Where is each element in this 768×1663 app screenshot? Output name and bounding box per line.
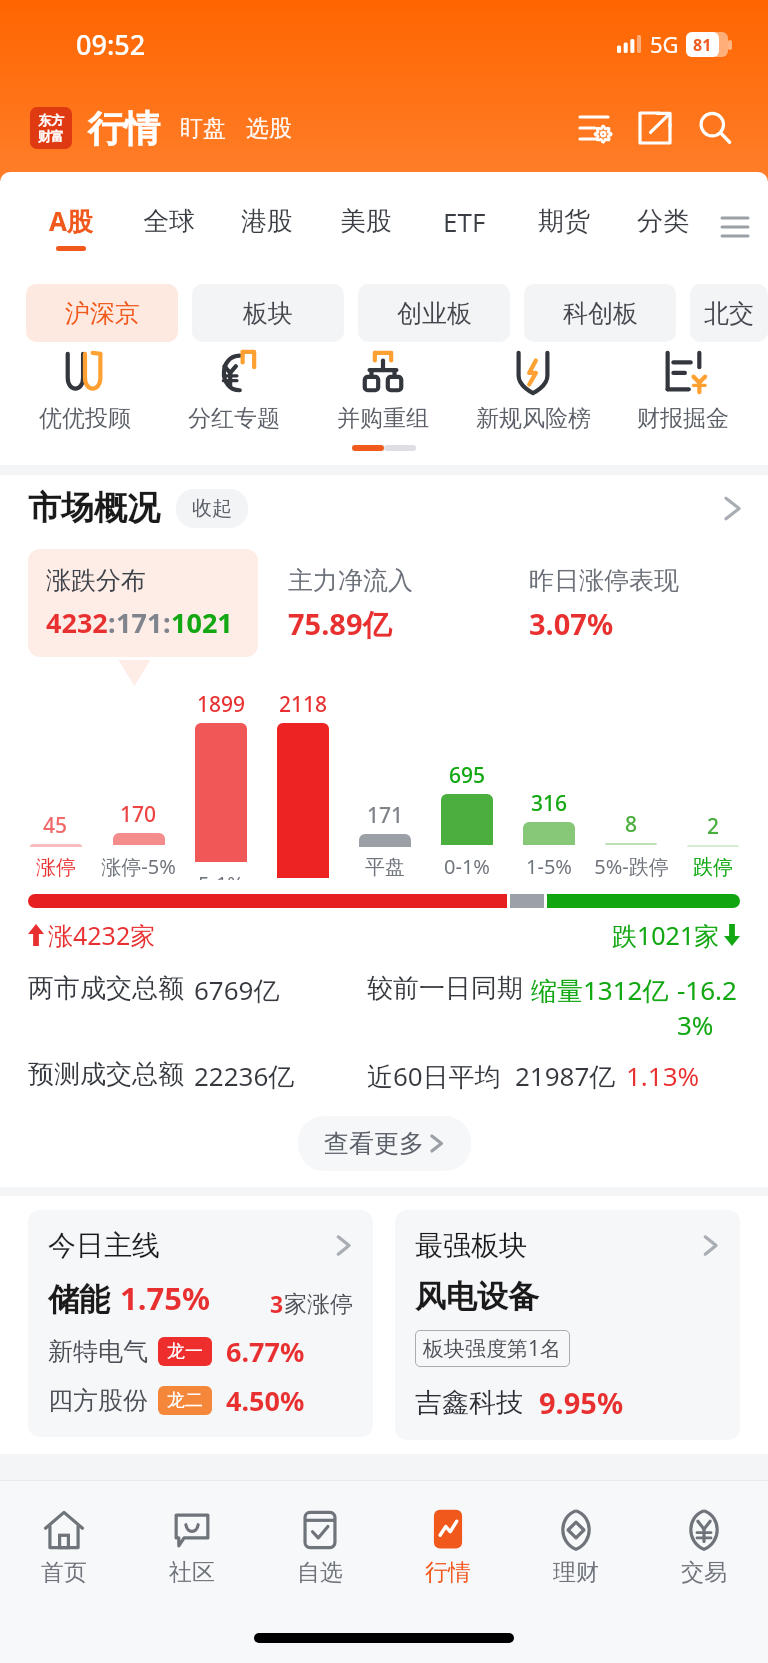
staticText: 316 xyxy=(531,789,568,818)
button[interactable]: 优优投顾 xyxy=(10,348,159,433)
staticText: 跌停 xyxy=(693,855,733,880)
button[interactable]: More tabs xyxy=(712,182,758,272)
staticText: 1.13% xyxy=(626,1058,700,1093)
staticText: 近60日平均 xyxy=(367,1058,501,1094)
staticText: 5G xyxy=(650,29,679,59)
button[interactable]: 盯盘 xyxy=(180,114,226,143)
staticText: 6769亿 xyxy=(194,972,280,1008)
button[interactable]: 行情 xyxy=(88,106,160,151)
button[interactable]: A股 xyxy=(22,182,120,272)
staticText: 5%-跌停 xyxy=(594,853,669,880)
staticText: 全球 xyxy=(143,205,195,238)
staticText: 新规风险榜 xyxy=(476,404,591,433)
staticText: 板块 xyxy=(243,298,293,329)
staticText: 龙二 xyxy=(167,1389,203,1412)
button[interactable]: 期货 xyxy=(514,182,613,272)
staticText: 查看更多 xyxy=(324,1128,424,1159)
staticText: 储能 xyxy=(48,1280,110,1319)
staticText: 港股 xyxy=(241,205,293,238)
button[interactable]: 涨跌分布 xyxy=(28,549,258,657)
button[interactable]: 分红专题 xyxy=(159,348,308,433)
staticText: 美股 xyxy=(340,205,392,238)
staticText: 171 xyxy=(367,801,404,830)
staticText: 4232 xyxy=(46,604,108,641)
staticText: 两市成交总额 xyxy=(28,972,184,1005)
button[interactable]: 科创板 xyxy=(524,284,676,342)
staticText: 缩量1312亿 xyxy=(531,972,669,1008)
button[interactable]: Share xyxy=(632,105,678,151)
button[interactable]: ETF xyxy=(415,182,514,272)
staticText: 1.75% xyxy=(120,1277,210,1319)
button[interactable]: 新规风险榜 xyxy=(458,348,608,433)
button[interactable]: 板块 xyxy=(192,284,344,342)
staticText: 新特电气 xyxy=(48,1336,148,1367)
staticText: 0-1% xyxy=(444,853,490,880)
staticText: 自选 xyxy=(297,1558,343,1587)
staticText: 优优投顾 xyxy=(39,404,131,433)
staticText: 09:52 xyxy=(76,26,146,63)
staticText: 板块强度第1名 xyxy=(423,1334,562,1363)
button[interactable]: 沪深京 xyxy=(26,284,178,342)
button[interactable]: 港股 xyxy=(218,182,316,272)
staticText: -16.23% xyxy=(677,972,740,1042)
staticText: 3.07% xyxy=(529,604,614,643)
button[interactable]: 并购重组 xyxy=(308,348,458,433)
button[interactable]: 社区 xyxy=(128,1481,256,1613)
staticText: 预测成交总额 xyxy=(28,1058,184,1091)
button[interactable]: 东方 xyxy=(30,107,72,149)
button[interactable]: 今日主线 xyxy=(28,1210,373,1437)
button[interactable]: 查看更多 xyxy=(298,1116,471,1171)
staticText: 75.89亿 xyxy=(288,604,392,644)
staticText: 跌1021家 xyxy=(612,918,720,952)
staticText: 9.95% xyxy=(539,1383,624,1422)
staticText: 81 xyxy=(693,34,712,56)
staticText: 主力净流入 xyxy=(288,565,413,596)
button[interactable]: 选股 xyxy=(246,114,292,143)
button[interactable]: 北交 xyxy=(690,284,768,342)
button[interactable]: 收起 xyxy=(192,496,232,521)
staticText: 22236亿 xyxy=(194,1058,295,1094)
staticText: 昨日涨停表现 xyxy=(529,565,679,596)
staticText: 21987亿 xyxy=(515,1058,616,1094)
staticText: 1021 xyxy=(171,604,233,641)
button[interactable]: 行情 xyxy=(384,1481,512,1613)
button[interactable]: 最强板块 xyxy=(395,1210,740,1440)
button[interactable]: 分类 xyxy=(613,182,712,272)
staticText: 1-5% xyxy=(526,853,572,880)
staticText: 2118 xyxy=(279,690,328,719)
staticText: 平盘 xyxy=(365,855,405,880)
button[interactable]: 创业板 xyxy=(358,284,510,342)
staticText: 家涨停 xyxy=(284,1290,353,1319)
staticText: 8 xyxy=(625,810,638,839)
staticText: 分红专题 xyxy=(188,404,280,433)
staticText: 3 xyxy=(270,1288,284,1319)
staticText: 首页 xyxy=(41,1558,87,1587)
button[interactable]: Settings list xyxy=(572,105,618,151)
staticText: 并购重组 xyxy=(337,404,429,433)
staticText: 涨停 xyxy=(36,855,76,880)
button[interactable]: 财报掘金 xyxy=(608,348,758,433)
button[interactable]: Search xyxy=(692,105,738,151)
button[interactable]: 市场概况 xyxy=(28,487,744,529)
staticText: 财富 xyxy=(38,128,64,144)
staticText: 社区 xyxy=(169,1558,215,1587)
staticText: 北交 xyxy=(704,298,754,329)
staticText: 今日主线 xyxy=(48,1228,160,1263)
staticText: ETF xyxy=(443,204,486,239)
staticText: 695 xyxy=(449,761,486,790)
button[interactable]: 交易 xyxy=(640,1481,768,1613)
button[interactable]: 全球 xyxy=(120,182,218,272)
button[interactable]: 首页 xyxy=(0,1481,128,1613)
button[interactable]: 美股 xyxy=(316,182,415,272)
staticText: 期货 xyxy=(538,205,590,238)
button[interactable]: 自选 xyxy=(256,1481,384,1613)
staticText: 四方股份 xyxy=(48,1385,148,1416)
staticText: 收起 xyxy=(192,496,232,521)
button[interactable]: 主力净流入 xyxy=(270,549,499,660)
button[interactable]: 理财 xyxy=(512,1481,640,1613)
staticText: 涨停-5% xyxy=(101,853,176,880)
staticText: 龙一 xyxy=(167,1340,203,1363)
staticText: 较前一日同期 xyxy=(367,972,523,1005)
staticText: 4.50% xyxy=(226,1382,305,1419)
button[interactable]: 昨日涨停表现 xyxy=(511,549,740,659)
